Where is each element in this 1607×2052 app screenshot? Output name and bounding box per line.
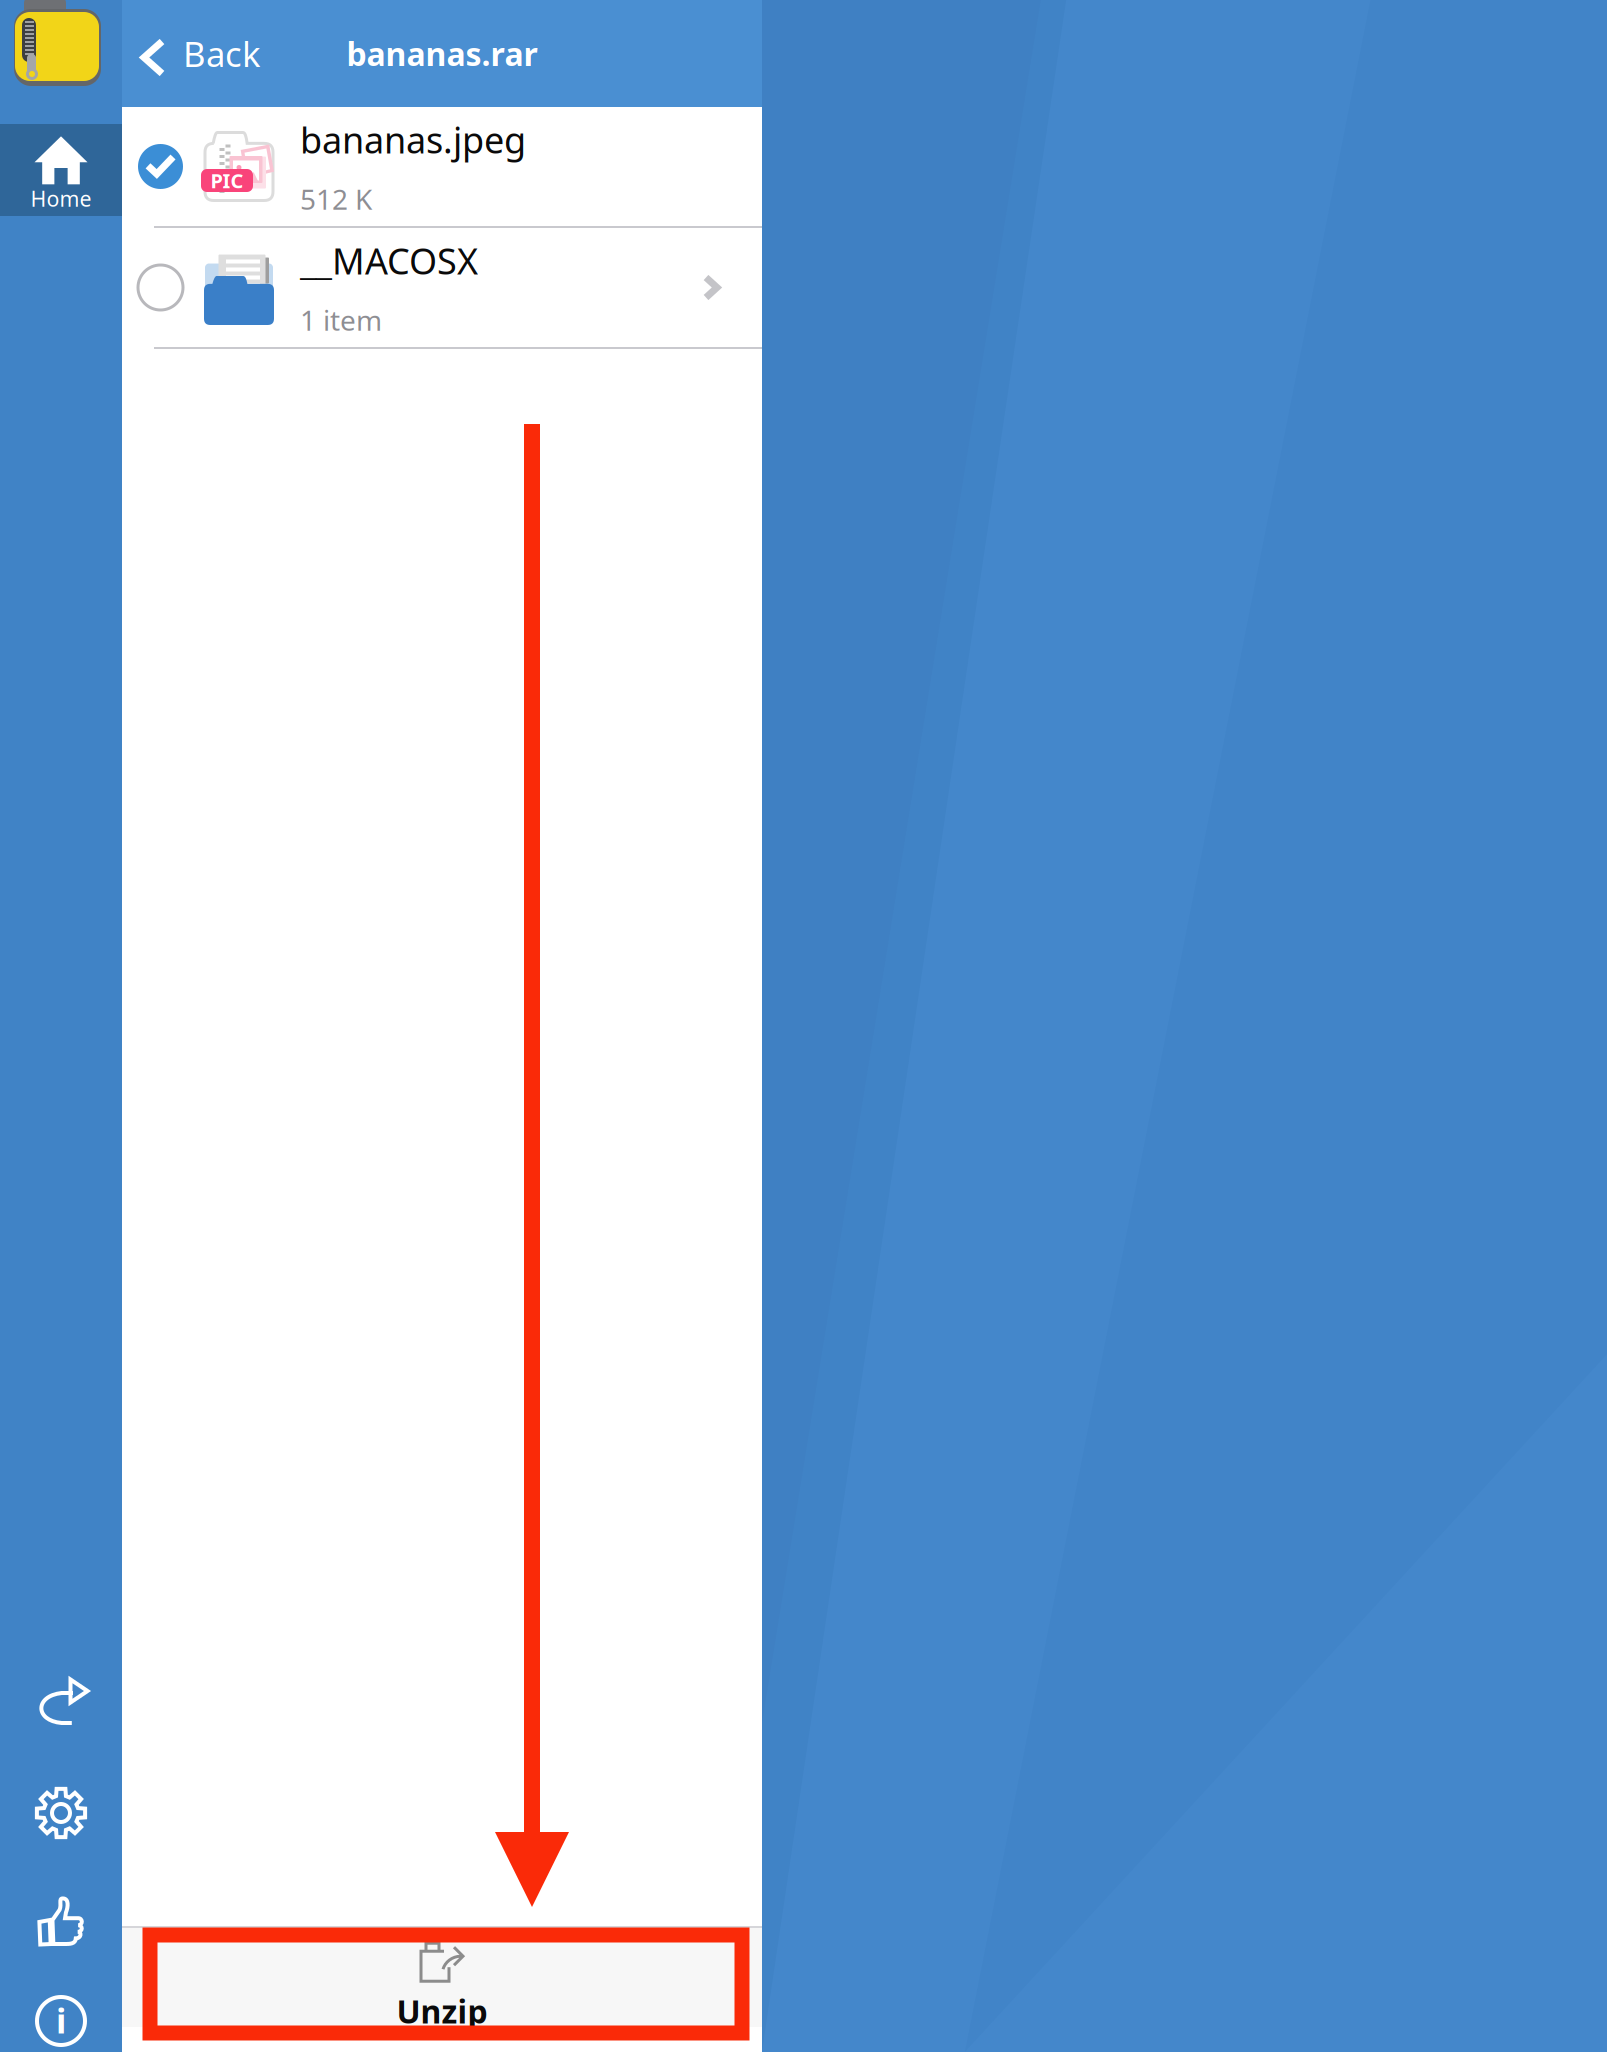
button[interactable]: Like [0, 1890, 122, 1952]
staticText: PIC [210, 167, 243, 194]
button[interactable]: PIC [122, 107, 762, 228]
button[interactable]: Information [0, 1990, 122, 2052]
staticText: i [56, 1996, 66, 2044]
staticText: 1 item [300, 301, 382, 338]
button[interactable]: Home [0, 124, 122, 216]
button[interactable]: Share [0, 1671, 122, 1733]
staticText: bananas.rar [346, 32, 537, 75]
staticText: 512 K [300, 180, 372, 217]
button[interactable]: Back [122, 0, 281, 107]
staticText: bananas.jpeg [300, 115, 526, 163]
button[interactable]: Zip app [0, 0, 122, 124]
button[interactable]: __MACOSX [122, 228, 762, 349]
staticText: Back [183, 30, 261, 76]
button[interactable]: Unzip [122, 1928, 762, 2027]
staticText: Unzip [396, 1989, 487, 2033]
staticText: Home [30, 184, 91, 213]
staticText: __MACOSX [300, 236, 478, 284]
button[interactable]: Settings [0, 1782, 122, 1844]
